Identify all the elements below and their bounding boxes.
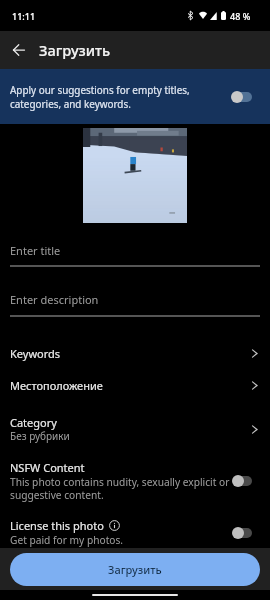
staticText: Без рубрики <box>10 429 70 443</box>
button[interactable]: NSFW Content <box>0 455 270 507</box>
staticText: Get paid for my photos. <box>10 533 232 547</box>
button[interactable]: Toggle <box>231 90 252 104</box>
button[interactable]: Keywords <box>0 337 270 369</box>
button[interactable]: Местоположение <box>0 369 270 401</box>
staticText: Category <box>10 415 57 430</box>
staticText: NSFW Content <box>10 460 85 475</box>
staticText: Apply our suggestions for empty titles, … <box>10 83 225 111</box>
button[interactable]: Загрузить <box>10 553 260 586</box>
button[interactable]: Back <box>0 31 38 69</box>
button[interactable]: Toggle <box>232 474 252 488</box>
staticText: Загрузить <box>108 562 162 577</box>
staticText: This photo contains nudity, sexually exp… <box>10 475 232 502</box>
staticText: Загрузить <box>39 40 111 60</box>
button[interactable]: License this photo <box>0 513 270 552</box>
staticText: Местоположение <box>10 378 103 393</box>
button[interactable]: Photo preview <box>83 128 187 223</box>
staticText: Keywords <box>10 346 61 361</box>
staticText: License this photo <box>10 518 104 533</box>
staticText: 48 % <box>230 10 251 22</box>
button[interactable]: Enter title <box>0 239 270 267</box>
staticText: Enter description <box>10 292 99 307</box>
button[interactable]: Enter description <box>0 288 270 317</box>
button[interactable]: Apply our suggestions for empty titles, … <box>0 69 270 124</box>
button[interactable]: Toggle <box>232 526 252 540</box>
staticText: 11:11 <box>12 10 36 22</box>
button[interactable]: Category <box>0 412 270 446</box>
staticText: Enter title <box>10 243 61 258</box>
